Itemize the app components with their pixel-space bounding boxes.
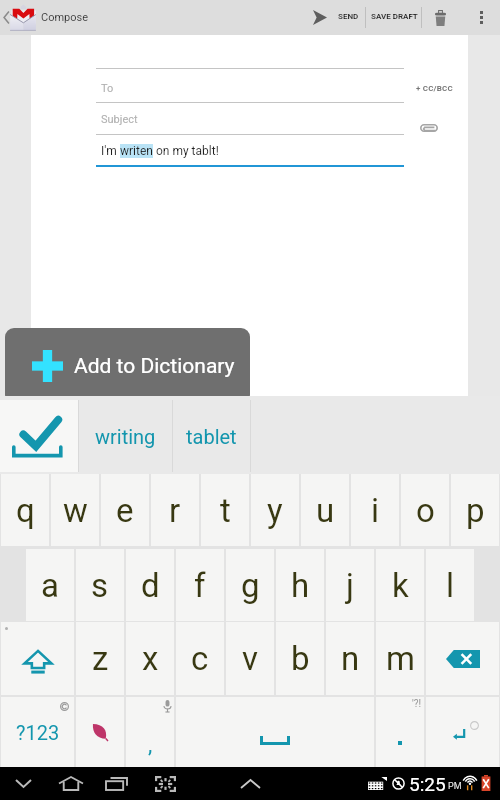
staticText: + CC/BCC xyxy=(416,84,453,93)
staticText: d xyxy=(141,566,160,605)
button[interactable]: p xyxy=(451,474,499,546)
button[interactable]: , xyxy=(126,697,174,767)
button[interactable]: writing xyxy=(78,400,172,472)
staticText: Subject xyxy=(101,113,138,126)
button[interactable]: More options xyxy=(462,0,500,35)
button[interactable]: u xyxy=(301,474,349,546)
other: Back xyxy=(3,11,10,24)
button[interactable]: To xyxy=(96,70,404,102)
staticText: b xyxy=(291,639,310,678)
button[interactable]: Recent apps xyxy=(101,770,132,797)
button[interactable]: Enter xyxy=(426,697,499,767)
button[interactable]: Choose input method xyxy=(366,775,388,792)
button[interactable]: Add to Dictionary xyxy=(5,328,250,404)
button[interactable]: q xyxy=(1,474,49,546)
staticText: p xyxy=(466,491,485,530)
staticText: PM xyxy=(448,781,462,792)
staticText: '?! xyxy=(412,698,422,710)
staticText: q xyxy=(16,491,35,530)
button[interactable]: ?123 xyxy=(1,697,74,767)
button[interactable]: d xyxy=(126,549,174,621)
staticText: , xyxy=(148,732,153,758)
staticText: j xyxy=(346,566,354,605)
button[interactable]: SEND xyxy=(305,0,366,35)
button[interactable]: Add to dictionary xyxy=(0,400,78,472)
staticText: Add to Dictionary xyxy=(74,354,235,379)
staticText: c xyxy=(191,639,209,678)
button[interactable]: j xyxy=(326,549,374,621)
staticText: o xyxy=(416,491,435,530)
button[interactable]: c xyxy=(176,622,224,695)
button[interactable]: e xyxy=(101,474,149,546)
staticText: t xyxy=(220,491,231,530)
button[interactable]: r xyxy=(151,474,199,546)
button[interactable]: Backspace xyxy=(426,622,499,695)
button[interactable]: Emoji xyxy=(76,697,124,767)
button[interactable]: w xyxy=(51,474,99,546)
button[interactable]: l xyxy=(426,549,474,621)
button[interactable]: + CC/BCC xyxy=(414,82,455,95)
button[interactable]: t xyxy=(201,474,249,546)
staticText: on my tablt! xyxy=(153,144,219,158)
button[interactable]: Attach file xyxy=(418,118,440,138)
staticText: SEND xyxy=(338,12,359,21)
button[interactable]: Hide keyboard xyxy=(8,770,39,797)
staticText: s xyxy=(91,566,109,605)
button[interactable]: i xyxy=(351,474,399,546)
button[interactable]: n xyxy=(326,622,374,695)
button[interactable]: Discard xyxy=(422,0,458,35)
staticText: e xyxy=(116,491,134,530)
staticText: u xyxy=(316,491,335,530)
button[interactable]: y xyxy=(251,474,299,546)
staticText: tablet xyxy=(186,425,237,448)
button[interactable]: a xyxy=(26,549,74,621)
staticText: i xyxy=(371,491,380,530)
staticText: 5:25 xyxy=(409,773,446,795)
staticText: y xyxy=(267,491,283,530)
staticText: writen xyxy=(120,144,153,158)
button[interactable]: Back xyxy=(0,0,92,35)
button[interactable]: h xyxy=(276,549,324,621)
button[interactable]: g xyxy=(226,549,274,621)
staticText: h xyxy=(291,566,310,605)
button[interactable]: k xyxy=(376,549,424,621)
button[interactable]: Silent mode xyxy=(390,775,406,792)
button[interactable]: x xyxy=(126,622,174,695)
button[interactable]: SAVE DRAFT xyxy=(366,0,421,35)
button[interactable]: Screenshot xyxy=(150,770,181,797)
staticText: v xyxy=(242,639,258,678)
button[interactable]: I'm xyxy=(96,135,404,166)
staticText: a xyxy=(41,566,59,605)
button[interactable]: Space xyxy=(176,697,374,767)
staticText: I'm xyxy=(101,144,120,158)
staticText: r xyxy=(169,491,181,530)
staticText: writing xyxy=(95,425,156,448)
staticText: SAVE DRAFT xyxy=(371,12,418,21)
button[interactable]: z xyxy=(76,622,124,695)
staticText: To xyxy=(101,82,114,95)
button[interactable]: v xyxy=(226,622,274,695)
staticText: n xyxy=(341,639,360,678)
button[interactable]: m xyxy=(376,622,424,695)
staticText: Compose xyxy=(41,11,89,24)
staticText: x xyxy=(142,639,159,678)
staticText: f xyxy=(194,566,206,605)
button[interactable]: Shift xyxy=(1,622,74,695)
button[interactable]: Home xyxy=(55,770,86,797)
button[interactable]: b xyxy=(276,622,324,695)
staticText: z xyxy=(92,639,109,678)
staticText: m xyxy=(386,639,415,678)
staticText: l xyxy=(446,566,455,605)
staticText: ?123 xyxy=(16,721,60,744)
button[interactable]: Show navigation xyxy=(235,770,266,797)
staticText: k xyxy=(392,566,409,605)
staticText: g xyxy=(241,566,260,605)
button[interactable]: s xyxy=(76,549,124,621)
staticText: w xyxy=(63,491,88,530)
button[interactable]: tablet xyxy=(172,400,250,472)
button[interactable]: o xyxy=(401,474,449,546)
button[interactable]: '?! xyxy=(376,697,424,767)
button[interactable]: f xyxy=(176,549,224,621)
button[interactable]: Subject xyxy=(96,104,404,134)
